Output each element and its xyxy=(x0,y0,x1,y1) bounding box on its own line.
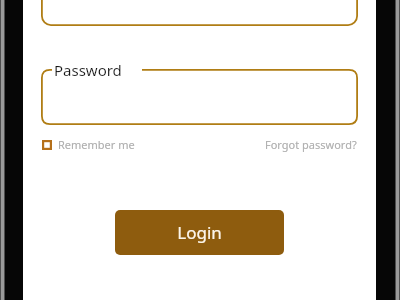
staticText: Login xyxy=(177,221,222,244)
staticText: Forgot password? xyxy=(265,137,357,152)
other: Remember me checkbox xyxy=(42,140,52,150)
button[interactable]: Remember me checkbox xyxy=(42,137,135,152)
staticText: Remember me xyxy=(58,137,135,152)
button[interactable]: Forgot password? xyxy=(265,137,357,152)
button[interactable] xyxy=(41,0,358,26)
staticText: Password xyxy=(54,60,122,80)
button[interactable]: Login xyxy=(115,210,284,255)
button[interactable] xyxy=(41,69,358,125)
